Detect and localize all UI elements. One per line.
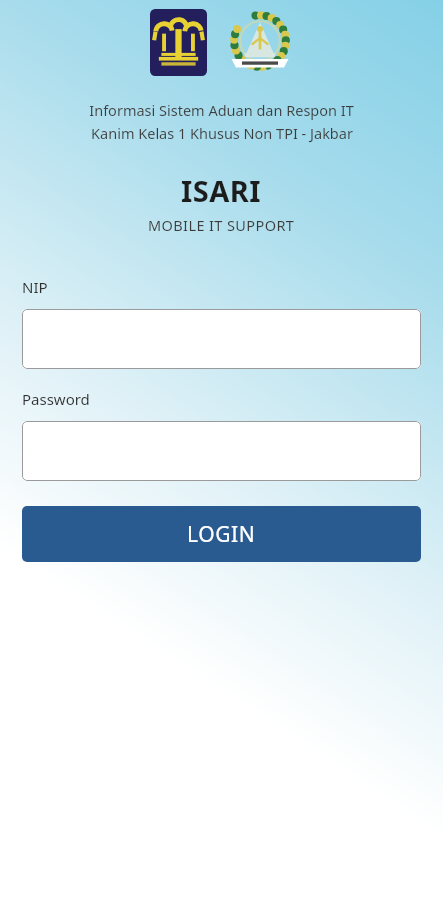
other: Logo Imigrasi bbox=[227, 10, 293, 76]
button[interactable] bbox=[22, 421, 421, 481]
staticText: Informasi Sistem Aduan dan Respon IT bbox=[89, 100, 354, 120]
staticText: Password bbox=[22, 389, 90, 409]
staticText: LOGIN bbox=[187, 520, 256, 549]
staticText: MOBILE IT SUPPORT bbox=[148, 215, 295, 235]
staticText: ISARI bbox=[181, 171, 262, 210]
button[interactable] bbox=[22, 309, 421, 369]
staticText: NIP bbox=[22, 277, 48, 297]
button[interactable]: LOGIN bbox=[22, 506, 421, 562]
staticText: Kanim Kelas 1 Khusus Non TPI - Jakbar bbox=[91, 123, 353, 143]
other: Logo Kementerian Hukum dan HAM bbox=[150, 9, 207, 76]
